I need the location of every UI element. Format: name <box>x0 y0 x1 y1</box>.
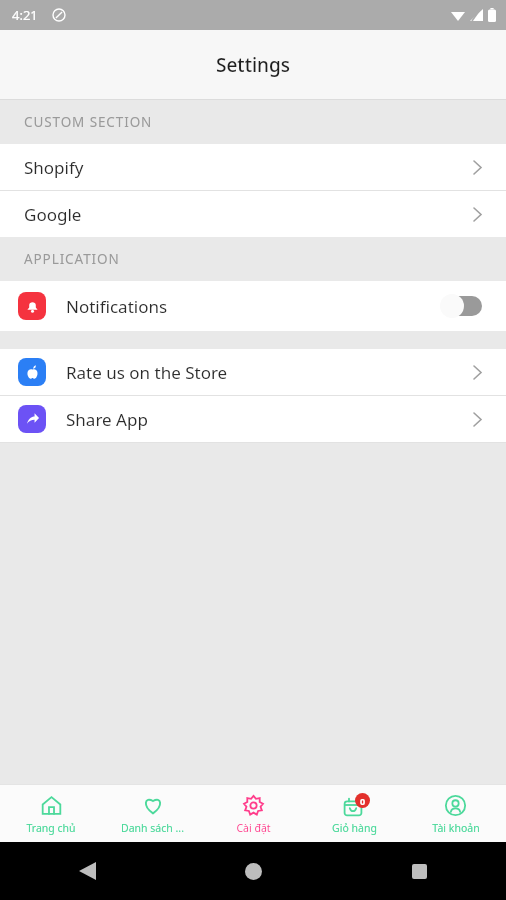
button[interactable]: Danh sách ... <box>102 785 203 842</box>
staticText: 4:21 <box>12 6 38 24</box>
button[interactable]: Shopify <box>0 144 506 190</box>
button[interactable]: Share App <box>0 396 506 442</box>
staticText: Share App <box>66 408 148 431</box>
button[interactable]: Cài đặt <box>203 785 304 842</box>
button[interactable]: Toggle notifications <box>440 294 486 318</box>
staticText: CUSTOM SECTION <box>24 113 153 131</box>
staticText: Notifications <box>66 295 168 318</box>
staticText: Giỏ hàng <box>332 821 377 835</box>
staticText: Shopify <box>24 156 84 179</box>
staticText: Trang chủ <box>26 821 76 835</box>
button[interactable]: Notifications <box>0 281 506 331</box>
button[interactable]: Google <box>0 191 506 237</box>
staticText: 0 <box>360 795 366 807</box>
button[interactable]: Home <box>236 854 270 888</box>
button[interactable]: 0 <box>304 785 405 842</box>
staticText: Rate us on the Store <box>66 361 228 384</box>
button[interactable]: Trang chủ <box>0 785 102 842</box>
staticText: Danh sách ... <box>121 821 184 835</box>
button[interactable]: Rate us on the Store <box>0 349 506 395</box>
staticText: Tài khoản <box>432 821 480 835</box>
staticText: Cài đặt <box>236 821 271 835</box>
button[interactable]: Back <box>70 854 104 888</box>
staticText: APPLICATION <box>24 250 120 268</box>
staticText: Settings <box>216 52 290 78</box>
button[interactable]: Recents <box>402 854 436 888</box>
staticText: Google <box>24 203 82 226</box>
button[interactable]: Tài khoản <box>405 785 506 842</box>
